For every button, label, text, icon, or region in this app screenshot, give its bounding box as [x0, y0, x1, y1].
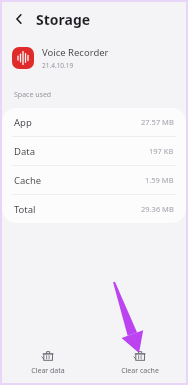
staticText: 1.59 MB — [145, 175, 174, 185]
button[interactable]: Data — [2, 137, 186, 165]
staticText: 197 KB — [149, 146, 174, 156]
staticText: Clear data — [31, 366, 65, 376]
staticText: Storage — [36, 10, 91, 29]
button[interactable]: Total — [2, 195, 186, 223]
staticText: 21.4.10.19 — [42, 61, 74, 70]
button[interactable]: Cache — [2, 166, 186, 194]
staticText: Clear cache — [121, 366, 159, 376]
staticText: 27.57 MB — [141, 117, 174, 127]
button[interactable]: Back — [8, 8, 30, 30]
button[interactable]: App — [2, 108, 186, 136]
button[interactable]: Clear data — [2, 341, 94, 383]
button[interactable]: Voice Recorder — [2, 36, 186, 80]
staticText: Cache — [14, 174, 42, 187]
staticText: Voice Recorder — [42, 46, 109, 59]
button[interactable]: Clear cache — [94, 341, 186, 383]
staticText: Data — [14, 145, 36, 158]
staticText: App — [14, 116, 32, 129]
staticText: Space used — [14, 90, 52, 100]
staticText: Total — [14, 203, 36, 216]
staticText: 29.36 MB — [141, 204, 174, 214]
